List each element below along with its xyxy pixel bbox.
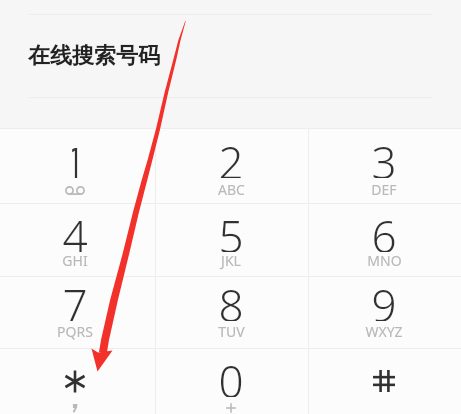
staticText: ABC: [218, 180, 245, 199]
staticText: JKL: [221, 251, 241, 270]
button[interactable]: 在线搜索号码: [28, 42, 160, 70]
button[interactable]: 7: [0, 277, 155, 348]
button[interactable]: 2: [156, 129, 308, 203]
staticText: 0: [218, 351, 244, 397]
staticText: GHI: [62, 251, 88, 270]
staticText: 7: [62, 275, 88, 321]
button[interactable]: Pound: [309, 349, 461, 414]
staticText: PQRS: [57, 322, 93, 341]
button[interactable]: 8: [156, 277, 308, 348]
staticText: 2: [218, 132, 244, 178]
button[interactable]: 4: [0, 204, 155, 276]
button[interactable]: 5: [156, 204, 308, 276]
button[interactable]: 0: [156, 349, 308, 414]
staticText: 9: [371, 275, 397, 321]
staticText: 6: [371, 206, 397, 252]
button[interactable]: 3: [309, 129, 461, 203]
other: Star: [64, 371, 86, 392]
button[interactable]: 6: [309, 204, 461, 276]
button[interactable]: Star: [0, 349, 155, 414]
button[interactable]: 9: [309, 277, 461, 348]
staticText: 3: [371, 132, 397, 178]
staticText: TUV: [218, 322, 245, 341]
staticText: MNO: [367, 251, 402, 270]
staticText: WXYZ: [365, 322, 403, 341]
other: Pound: [373, 370, 395, 392]
button[interactable]: [0, 129, 155, 203]
staticText: 8: [218, 275, 244, 321]
staticText: DEF: [371, 180, 397, 199]
staticText: 4: [62, 206, 88, 252]
staticText: 5: [218, 206, 244, 252]
